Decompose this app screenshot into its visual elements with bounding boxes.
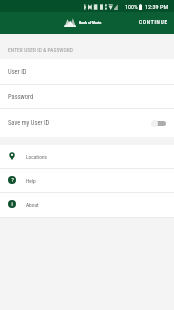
- staticText: i: [11, 201, 13, 207]
- staticText: ENTER USER ID & PASSWORD: [8, 47, 73, 53]
- button[interactable]: Password: [0, 85, 174, 109]
- button[interactable]: Locations: [0, 145, 174, 168]
- staticText: CONTINUE: [139, 19, 168, 25]
- staticText: Help: [26, 178, 36, 184]
- button[interactable]: User ID: [0, 59, 174, 85]
- button[interactable]: Save my User ID: [0, 109, 174, 137]
- staticText: Locations: [26, 154, 47, 160]
- staticText: 12:39 PM: [145, 3, 169, 10]
- staticText: About: [26, 202, 39, 208]
- button[interactable]: CONTINUE: [132, 14, 174, 30]
- button[interactable]: i: [0, 193, 174, 217]
- button[interactable]: ?: [0, 169, 174, 192]
- staticText: Bank of Marin: [79, 21, 102, 25]
- staticText: Password: [8, 93, 34, 101]
- other: Locations: [8, 152, 16, 160]
- staticText: ?: [11, 177, 14, 183]
- staticText: User ID: [8, 68, 27, 76]
- staticText: Save my User ID: [8, 119, 50, 127]
- staticText: 100%: [125, 3, 138, 10]
